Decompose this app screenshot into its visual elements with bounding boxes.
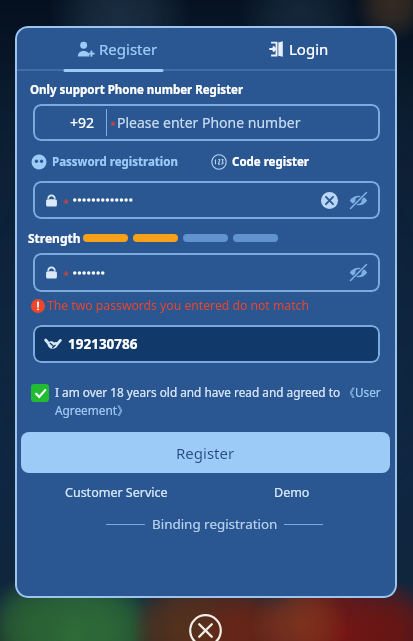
button[interactable]: * xyxy=(33,253,380,292)
staticText: Register xyxy=(176,443,235,463)
button[interactable]: Register xyxy=(15,26,206,95)
button[interactable]: Customer Service xyxy=(23,484,210,501)
button[interactable]: Code register xyxy=(211,154,309,170)
staticText: +92 xyxy=(70,113,95,132)
staticText: * xyxy=(63,195,70,210)
button[interactable]: * xyxy=(33,181,380,219)
staticText: The two passwords you entered do not mat… xyxy=(47,297,309,314)
staticText: Only support Phone number Register xyxy=(30,82,244,98)
staticText: Customer Service xyxy=(65,484,168,501)
button[interactable]: +92 xyxy=(33,104,380,141)
button[interactable]: Binding registration xyxy=(152,515,278,533)
staticText: * xyxy=(63,267,70,282)
button[interactable]: I am over 18 years old and have read and… xyxy=(31,384,395,419)
staticText: 192130786 xyxy=(68,335,138,353)
button[interactable]: Clear xyxy=(321,192,338,209)
staticText: I am over 18 years old and have read and… xyxy=(55,384,395,419)
staticText: Login xyxy=(289,39,329,59)
button[interactable]: Show password xyxy=(349,191,368,210)
staticText: Code register xyxy=(232,154,309,170)
staticText: * xyxy=(110,117,117,132)
button[interactable]: Close xyxy=(189,614,222,641)
staticText: Demo xyxy=(274,484,310,501)
staticText: Please enter Phone number xyxy=(117,113,301,132)
button[interactable]: Login xyxy=(206,26,397,95)
button[interactable]: Register xyxy=(21,432,390,473)
staticText: Password registration xyxy=(52,154,178,170)
staticText: Register xyxy=(99,39,158,59)
button[interactable]: Show password xyxy=(349,263,368,282)
button[interactable]: Demo xyxy=(198,484,385,501)
button[interactable]: Password registration xyxy=(31,154,178,170)
button[interactable]: 192130786 xyxy=(33,325,380,363)
staticText: Strength xyxy=(28,230,81,246)
